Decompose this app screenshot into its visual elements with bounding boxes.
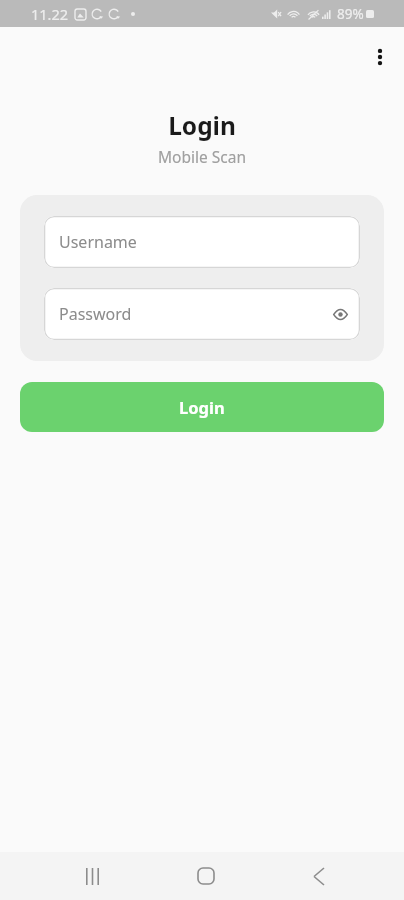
staticText: Password <box>59 303 132 325</box>
staticText: 11.22 <box>31 4 69 24</box>
staticText: Username <box>59 231 137 253</box>
button[interactable]: Username <box>44 216 360 268</box>
staticText: Mobile Scan <box>0 146 404 167</box>
button[interactable]: Show password <box>328 302 352 326</box>
button[interactable]: Password <box>44 288 360 340</box>
button[interactable]: More options <box>360 37 400 77</box>
button[interactable]: Home <box>149 852 262 900</box>
staticText: Login <box>0 109 404 142</box>
button[interactable]: Back <box>262 852 375 900</box>
staticText: 89% <box>337 5 364 23</box>
button[interactable]: Recents <box>35 852 149 900</box>
staticText: Login <box>179 396 225 418</box>
button[interactable]: Login <box>20 382 384 432</box>
